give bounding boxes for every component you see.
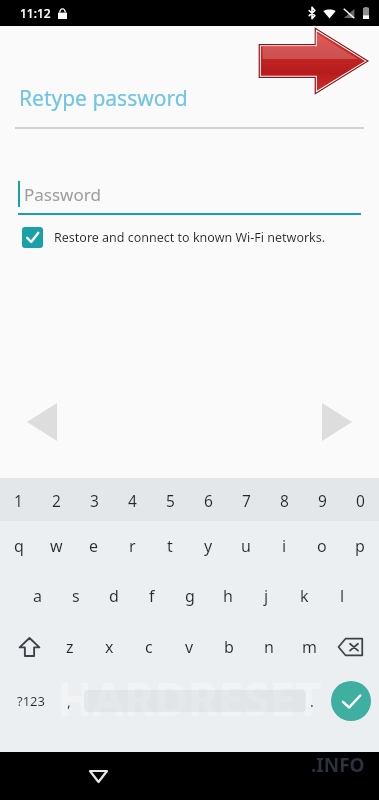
staticText: i xyxy=(282,535,287,557)
staticText: 11:12 xyxy=(20,5,51,21)
button[interactable]: ?123 xyxy=(8,681,54,721)
button[interactable]: u xyxy=(227,525,265,567)
button[interactable]: , xyxy=(58,681,80,721)
button[interactable]: w xyxy=(37,525,75,567)
button[interactable]: h xyxy=(209,575,247,617)
button[interactable]: q xyxy=(0,525,37,567)
staticText: o xyxy=(317,535,327,557)
staticText: y xyxy=(204,535,213,557)
staticText: 4 xyxy=(128,490,137,511)
button[interactable]: m xyxy=(289,626,329,668)
button[interactable]: c xyxy=(129,626,169,668)
button[interactable]: 8 xyxy=(265,479,303,521)
button[interactable]: Restore and connect to known Wi-Fi netwo… xyxy=(22,227,357,248)
staticText: c xyxy=(145,636,153,658)
staticText: r xyxy=(129,535,136,557)
staticText: m xyxy=(302,636,317,658)
staticText: q xyxy=(14,535,24,557)
button[interactable]: o xyxy=(303,525,341,567)
button[interactable]: 5 xyxy=(151,479,189,521)
staticText: 1 xyxy=(14,490,23,511)
staticText: a xyxy=(33,585,42,607)
button[interactable]: j xyxy=(247,575,285,617)
staticText: x xyxy=(105,636,114,658)
button[interactable]: 3 xyxy=(75,479,113,521)
button[interactable]: . xyxy=(301,681,323,721)
staticText: , xyxy=(67,692,71,711)
button[interactable]: Password xyxy=(18,181,361,215)
staticText: d xyxy=(109,585,119,607)
staticText: k xyxy=(300,585,309,607)
staticText: ?123 xyxy=(17,692,45,710)
staticText: .INFO xyxy=(311,752,365,778)
staticText: 9 xyxy=(318,490,327,511)
staticText: HARDRESET xyxy=(57,667,322,730)
button[interactable]: b xyxy=(209,626,249,668)
staticText: l xyxy=(340,585,345,607)
staticText: 5 xyxy=(166,490,175,511)
button[interactable]: Done xyxy=(331,681,371,721)
button[interactable]: Shift xyxy=(8,626,50,668)
button[interactable]: e xyxy=(75,525,113,567)
button[interactable]: d xyxy=(95,575,133,617)
staticText: f xyxy=(149,585,155,607)
button[interactable]: 7 xyxy=(227,479,265,521)
button[interactable]: n xyxy=(249,626,289,668)
staticText: 2 xyxy=(52,490,61,511)
button[interactable]: p xyxy=(341,525,379,567)
staticText: Restore and connect to known Wi-Fi netwo… xyxy=(54,229,326,246)
button[interactable]: i xyxy=(265,525,303,567)
staticText: h xyxy=(223,585,233,607)
button[interactable]: Next xyxy=(311,396,363,448)
staticText: 0 xyxy=(356,490,365,511)
button[interactable]: s xyxy=(57,575,95,617)
button[interactable]: 0 xyxy=(341,479,379,521)
button[interactable]: x xyxy=(89,626,129,668)
staticText: g xyxy=(185,585,195,607)
button[interactable]: Previous xyxy=(16,396,68,448)
staticText: t xyxy=(167,535,173,557)
button[interactable]: t xyxy=(151,525,189,567)
button[interactable]: 1 xyxy=(0,479,37,521)
staticText: u xyxy=(241,535,251,557)
staticText: n xyxy=(264,636,274,658)
button[interactable]: v xyxy=(169,626,209,668)
staticText: s xyxy=(72,585,80,607)
button[interactable]: z xyxy=(50,626,89,668)
button[interactable]: k xyxy=(285,575,323,617)
button[interactable]: 6 xyxy=(189,479,227,521)
staticText: j xyxy=(264,585,269,607)
button[interactable]: l xyxy=(323,575,361,617)
staticText: Password xyxy=(24,183,101,206)
button[interactable]: Back xyxy=(78,756,118,796)
staticText: b xyxy=(224,636,234,658)
staticText: w xyxy=(50,535,63,557)
button[interactable]: f xyxy=(133,575,171,617)
button[interactable]: 2 xyxy=(37,479,75,521)
button[interactable]: g xyxy=(171,575,209,617)
staticText: v xyxy=(185,636,194,658)
button[interactable]: 4 xyxy=(113,479,151,521)
staticText: z xyxy=(66,636,74,658)
staticText: . xyxy=(310,692,314,711)
staticText: 3 xyxy=(90,490,99,511)
staticText: Retype password xyxy=(19,84,188,113)
staticText: p xyxy=(355,535,365,557)
staticText: e xyxy=(89,535,99,557)
button[interactable]: 9 xyxy=(303,479,341,521)
button[interactable]: y xyxy=(189,525,227,567)
staticText: 8 xyxy=(280,490,289,511)
button[interactable]: r xyxy=(113,525,151,567)
staticText: 7 xyxy=(242,490,251,511)
button[interactable]: a xyxy=(18,575,57,617)
staticText: 6 xyxy=(204,490,213,511)
button[interactable]: Backspace xyxy=(329,626,371,668)
